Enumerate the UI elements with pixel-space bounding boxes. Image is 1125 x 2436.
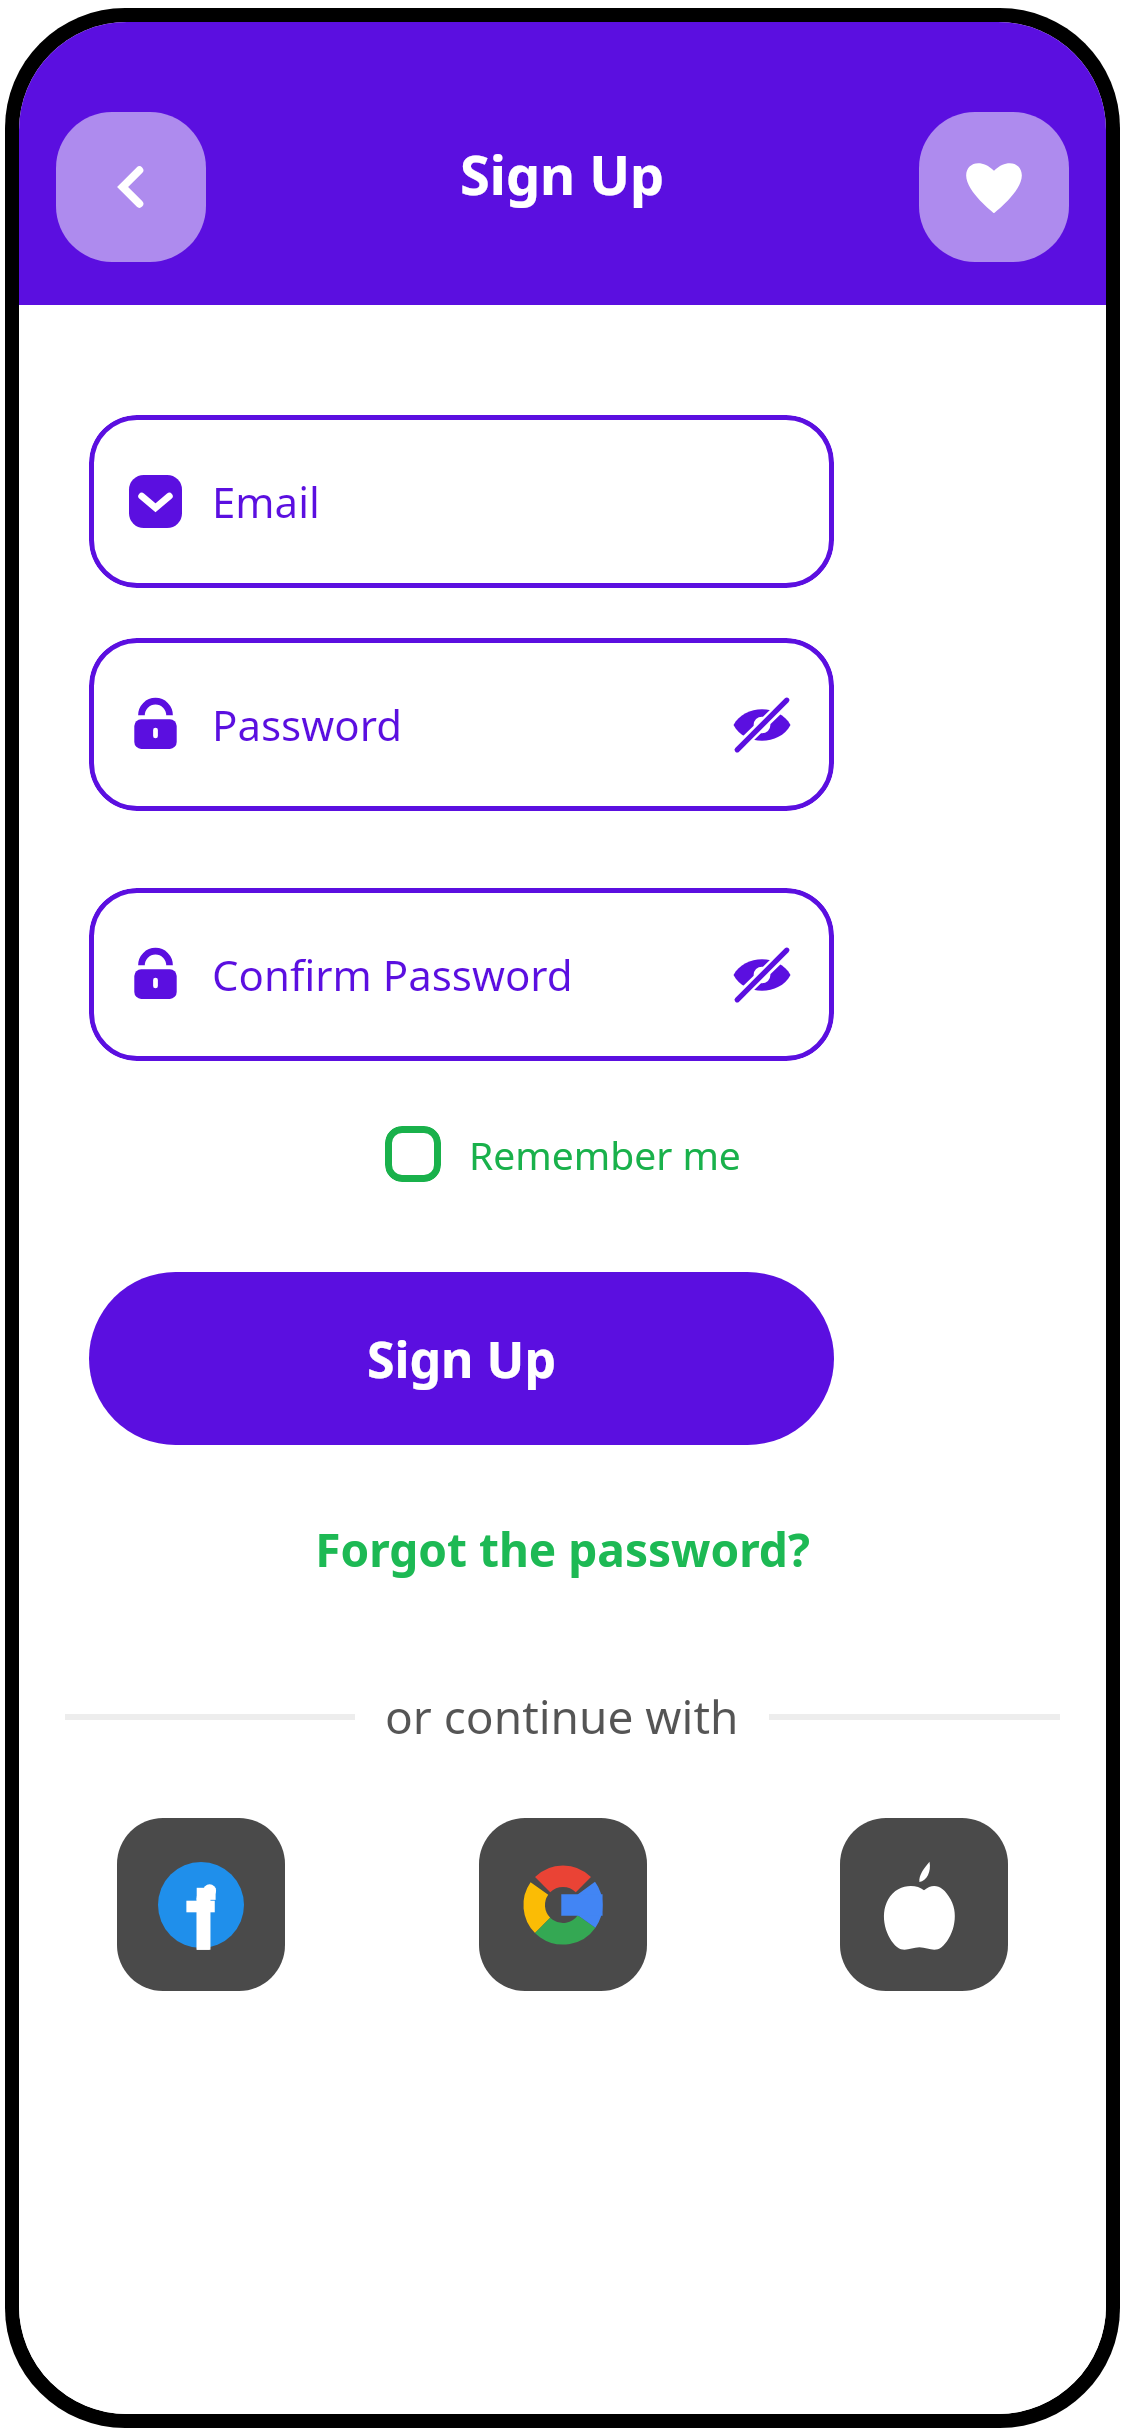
button[interactable]: Sign Up	[89, 1272, 834, 1445]
button[interactable]: Sign up with Facebook	[117, 1818, 285, 1991]
staticText: Remember me	[469, 1128, 741, 1181]
button[interactable]: Forgot the password?	[301, 1510, 824, 1589]
button[interactable]: Confirm Password	[89, 888, 834, 1061]
button[interactable]: Remember me	[379, 1120, 747, 1188]
button[interactable]: Password	[89, 638, 834, 811]
staticText: Sign Up	[367, 1325, 556, 1393]
button[interactable]: Favorite	[919, 112, 1069, 262]
staticText: Password	[212, 696, 730, 753]
staticText: or continue with	[385, 1685, 739, 1748]
staticText: Email	[212, 473, 794, 530]
staticText: Confirm Password	[212, 946, 730, 1003]
staticText: Sign Up	[460, 137, 665, 211]
button[interactable]: Sign up with Apple	[840, 1818, 1008, 1991]
button[interactable]: Email	[89, 415, 834, 588]
button[interactable]: Back	[56, 112, 206, 262]
button[interactable]: Toggle password visibility	[730, 943, 794, 1007]
button[interactable]: Toggle password visibility	[730, 693, 794, 757]
staticText: Forgot the password?	[315, 1518, 810, 1581]
button[interactable]: Sign up with Google	[479, 1818, 647, 1991]
